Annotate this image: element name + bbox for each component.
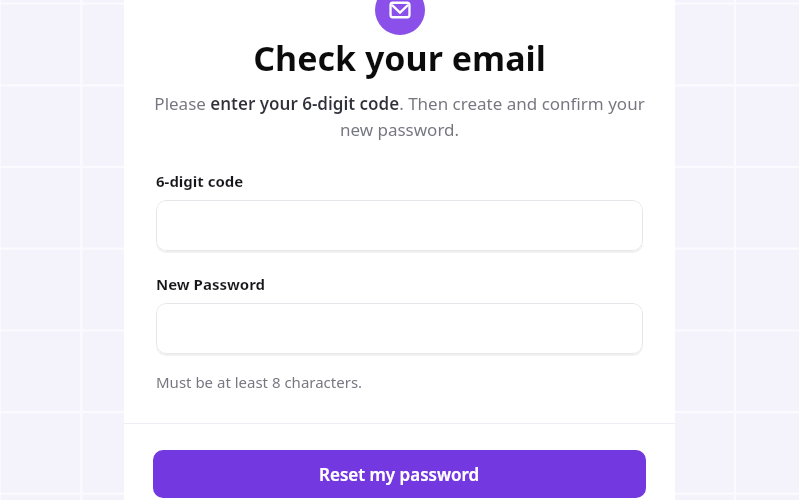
staticText: Please enter your 6-digit code. Then cre… <box>148 92 651 141</box>
staticText: Must be at least 8 characters. <box>156 372 363 392</box>
other: Email sent <box>375 0 425 35</box>
button[interactable]: Reset my password <box>153 450 646 498</box>
staticText: New Password <box>156 274 266 294</box>
staticText: 6-digit code <box>156 171 244 191</box>
staticText: Check your email <box>253 35 546 81</box>
staticText: Reset my password <box>319 463 480 486</box>
button[interactable]: 6-digit code input <box>156 200 643 251</box>
button[interactable]: New password input <box>156 303 643 354</box>
